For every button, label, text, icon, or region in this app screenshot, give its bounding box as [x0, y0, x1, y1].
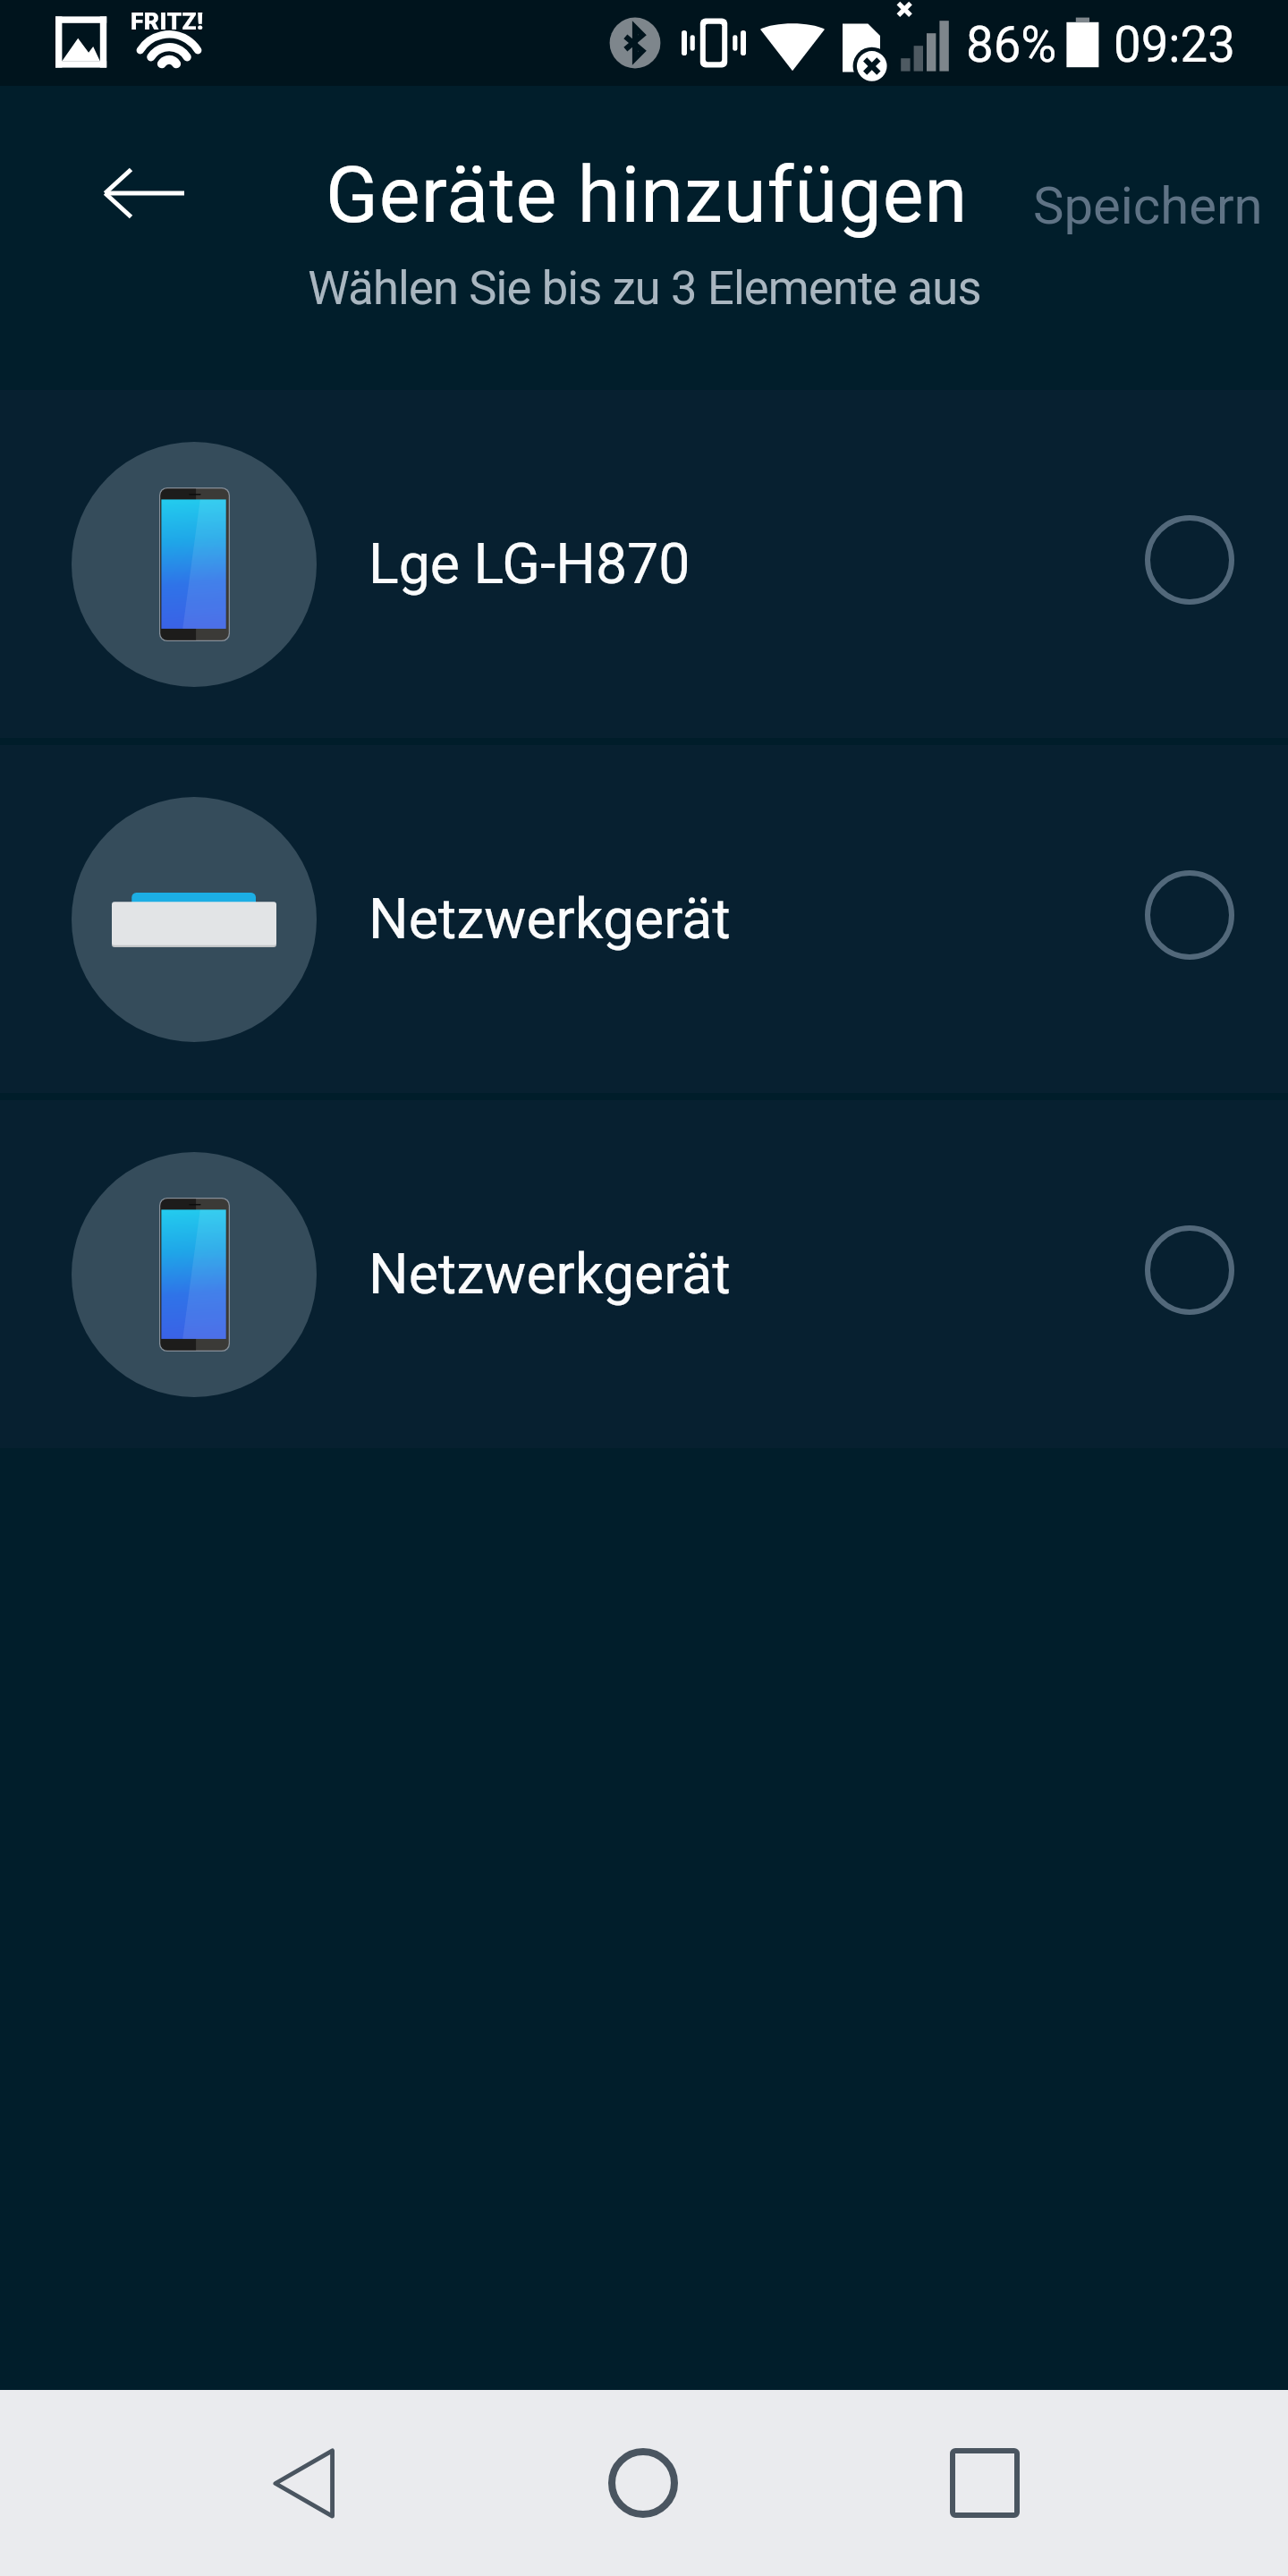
- staticText: Wählen Sie bis zu 3 Elemente aus: [308, 260, 981, 315]
- button[interactable]: Netzwerkgerät: [0, 745, 1288, 1093]
- button[interactable]: Lge LG-H870: [0, 390, 1288, 738]
- button[interactable]: Recent apps: [899, 2397, 1071, 2569]
- staticText: Geräte hinzufügen: [326, 150, 969, 241]
- staticText: 09:23: [1114, 16, 1235, 73]
- button[interactable]: Speichern: [1012, 154, 1284, 258]
- button[interactable]: Select Netzwerkgerät: [1093, 1174, 1286, 1367]
- staticText: Speichern: [1033, 175, 1263, 236]
- staticText: Lge LG-H870: [369, 531, 691, 597]
- button[interactable]: Back: [217, 2397, 389, 2569]
- staticText: FRITZ!: [131, 8, 204, 36]
- staticText: Netzwerkgerät: [369, 886, 731, 952]
- button[interactable]: Home: [557, 2397, 729, 2569]
- staticText: Netzwerkgerät: [369, 1241, 731, 1307]
- staticText: 86%: [966, 16, 1057, 73]
- button[interactable]: Netzwerkgerät: [0, 1100, 1288, 1448]
- button[interactable]: Select Netzwerkgerät: [1093, 818, 1286, 1012]
- button[interactable]: Select Lge LG-H870: [1093, 463, 1286, 657]
- button[interactable]: Back: [58, 107, 230, 279]
